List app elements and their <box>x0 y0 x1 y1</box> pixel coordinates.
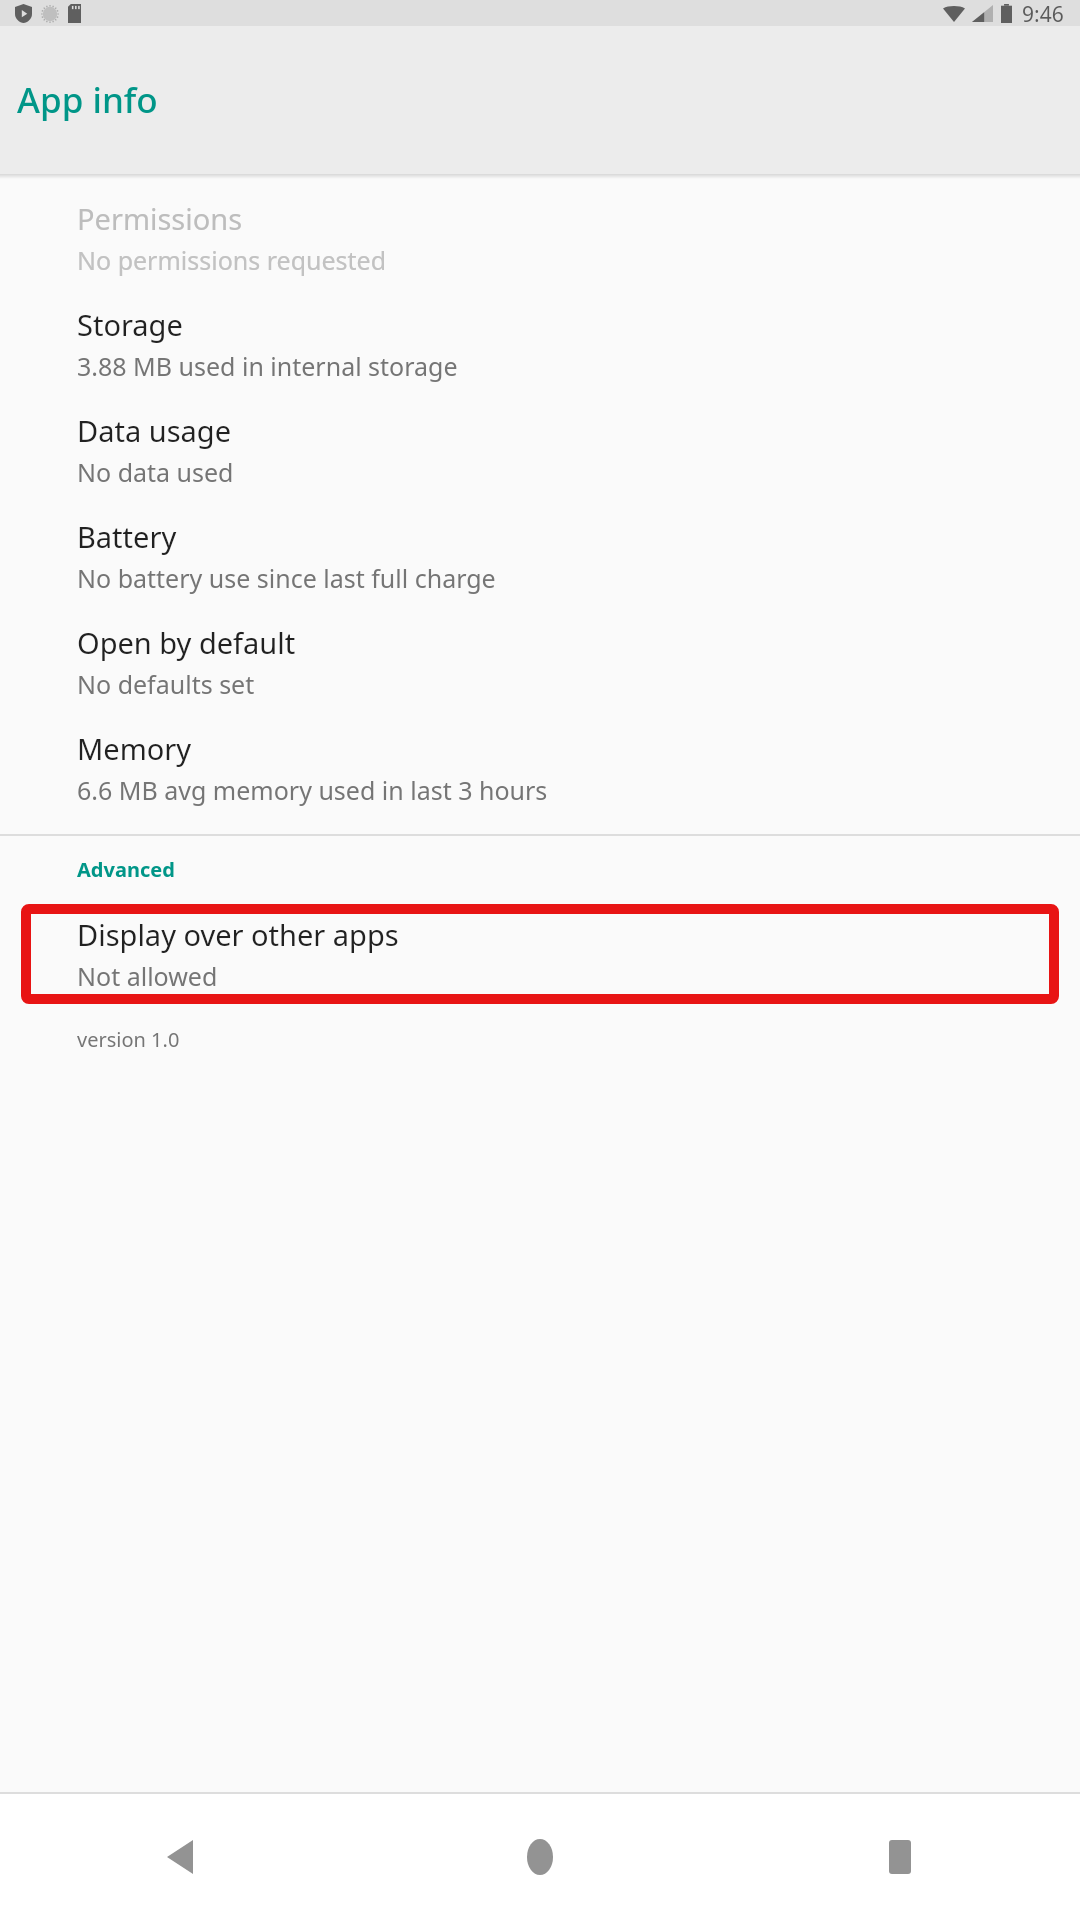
button[interactable]: Open by default <box>0 609 1080 715</box>
button: Permissions <box>0 185 1080 291</box>
staticText: 6.6 MB avg memory used in last 3 hours <box>77 773 548 807</box>
button[interactable]: Display over other apps <box>21 904 1059 1004</box>
staticText: Battery <box>77 517 177 556</box>
staticText: Storage <box>77 305 183 344</box>
staticText: Not allowed <box>77 959 218 993</box>
staticText: App info <box>17 76 158 124</box>
staticText: No permissions requested <box>77 243 387 277</box>
staticText: Memory <box>77 729 192 768</box>
button[interactable]: Memory <box>0 715 1080 821</box>
staticText: Open by default <box>77 623 296 662</box>
staticText: 3.88 MB used in internal storage <box>77 349 458 383</box>
button[interactable]: Storage <box>0 291 1080 397</box>
staticText: No battery use since last full charge <box>77 561 496 595</box>
staticText: Permissions <box>77 199 243 238</box>
staticText: 9:46 <box>1022 0 1064 26</box>
staticText: Data usage <box>77 411 231 450</box>
button[interactable]: Back <box>0 1794 360 1920</box>
staticText: Display over other apps <box>77 915 399 954</box>
staticText: Advanced <box>77 856 175 883</box>
staticText: version 1.0 <box>77 1026 180 1053</box>
button[interactable]: Data usage <box>0 397 1080 503</box>
staticText: No data used <box>77 455 234 489</box>
button[interactable]: Recent apps <box>720 1794 1080 1920</box>
button[interactable]: Battery <box>0 503 1080 609</box>
button[interactable]: Home <box>360 1794 720 1920</box>
staticText: No defaults set <box>77 667 255 701</box>
